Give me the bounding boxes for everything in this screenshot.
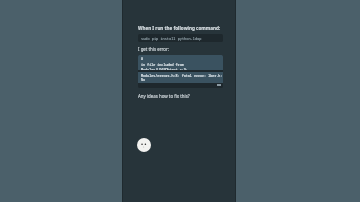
staticText: #: [141, 56, 144, 61]
staticText: Any ideas how to fix this?: [138, 93, 190, 99]
button[interactable]: #: [138, 55, 223, 88]
staticText: I get this error:: [138, 46, 169, 52]
staticText: Modules/errors.h:8: fatal error: lber.h:…: [141, 73, 223, 82]
staticText: sudo pip install python-ldap: [141, 36, 202, 41]
button[interactable]: sudo pip install python-ldap: [138, 34, 223, 42]
button[interactable]: Profile avatar: [137, 138, 151, 152]
staticText: Modules/LDAPObject.c:9:: [141, 67, 188, 70]
staticText: When I run the following command:: [138, 25, 221, 31]
staticText: in file included from: [141, 62, 184, 67]
